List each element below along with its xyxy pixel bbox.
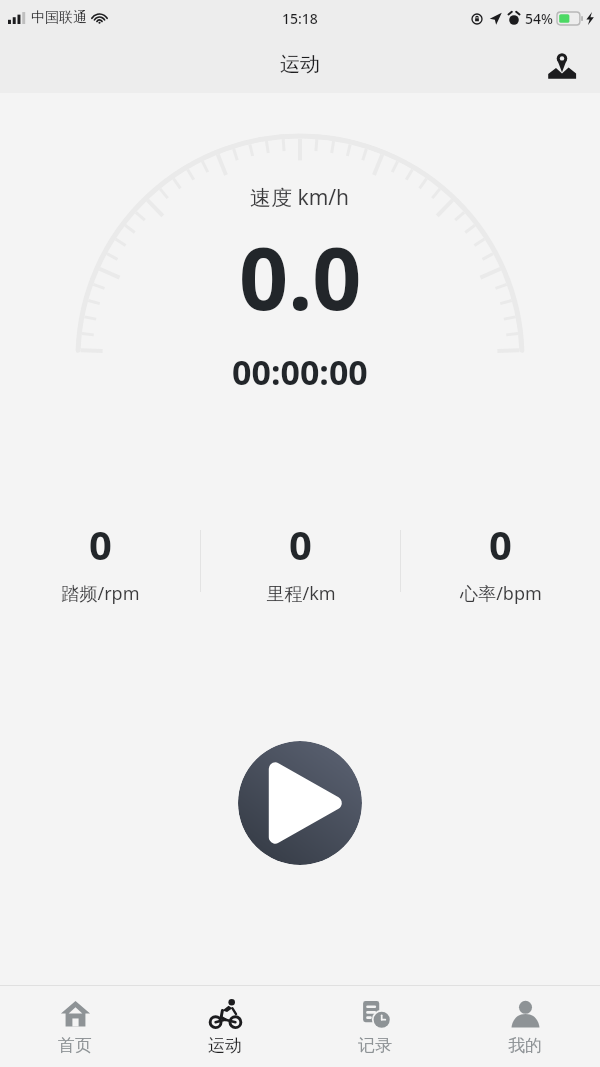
staticText: 心率/bpm [460,581,542,606]
staticText: 0 [489,517,512,571]
button[interactable]: 0 [0,517,200,606]
staticText: 0 [289,517,312,571]
staticText: 记录 [358,1035,392,1056]
staticText: 15:18 [282,9,318,28]
button[interactable]: 0 [401,517,600,606]
button[interactable]: 记录 [300,986,450,1067]
staticText: 运动 [208,1035,242,1056]
button[interactable]: Start workout [238,741,362,865]
staticText: 踏频/rpm [61,581,140,606]
button[interactable]: Map [540,43,584,87]
staticText: 速度 km/h [250,183,350,212]
staticText: 首页 [58,1035,92,1056]
button[interactable]: 我的 [450,986,600,1067]
staticText: 中国联通 [31,9,87,27]
button[interactable]: 首页 [0,986,150,1067]
staticText: 00:00:00 [232,349,368,395]
staticText: 我的 [508,1035,542,1056]
button[interactable]: 0 [201,517,400,606]
staticText: 运动 [280,52,320,77]
staticText: 里程/km [266,581,336,606]
staticText: 0 [89,517,112,571]
staticText: 54% [525,9,553,28]
staticText: 0.0 [239,218,362,335]
button[interactable]: 运动 [150,986,300,1067]
